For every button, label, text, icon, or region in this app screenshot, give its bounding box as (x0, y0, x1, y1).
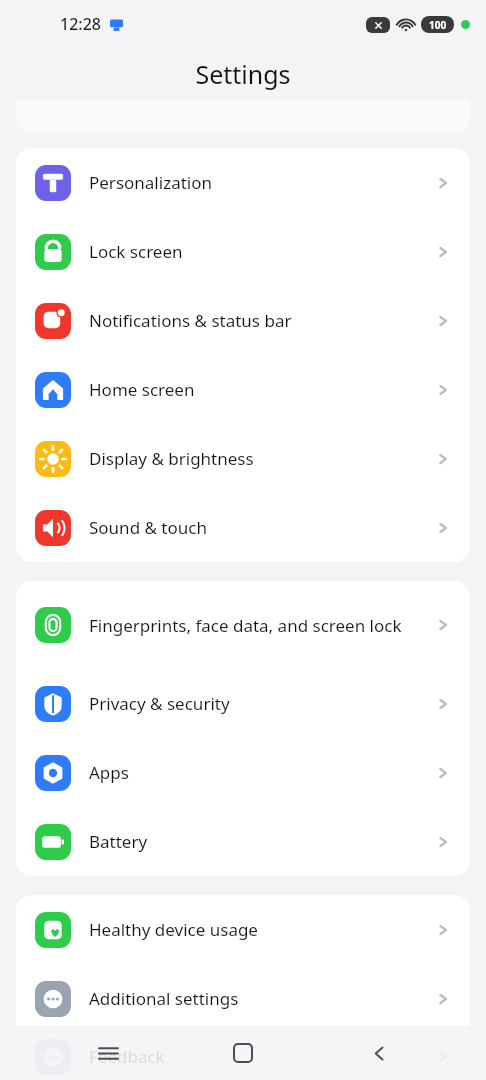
button[interactable]: Lock screen (16, 217, 470, 286)
button[interactable]: Additional settings (16, 964, 470, 1033)
staticText: Additional settings (89, 987, 424, 1010)
staticText: Home screen (89, 378, 424, 401)
button[interactable]: Battery (16, 807, 470, 876)
button[interactable]: Notifications & status bar (16, 286, 470, 355)
staticText: Display & brightness (89, 447, 424, 470)
staticText: Fingerprints, face data, and screen lock (89, 614, 424, 637)
staticText: 12:28 (60, 13, 101, 35)
button[interactable]: Privacy & security (16, 669, 470, 738)
staticText: Notifications & status bar (89, 309, 424, 332)
button[interactable]: Apps (16, 738, 470, 807)
button[interactable]: Home (215, 1026, 271, 1080)
staticText: Feedback (89, 1045, 424, 1068)
staticText: Privacy & security (89, 692, 424, 715)
button[interactable]: Personalization (16, 148, 470, 217)
staticText: Healthy device usage (89, 918, 424, 941)
button[interactable]: Fingerprints, face data, and screen lock (16, 581, 470, 669)
staticText: Apps (89, 761, 424, 784)
button[interactable]: Sound & touch (16, 493, 470, 562)
button[interactable]: Display & brightness (16, 424, 470, 493)
staticText: Settings (195, 57, 291, 91)
staticText: Sound & touch (89, 516, 424, 539)
button[interactable]: Feedback (16, 1033, 470, 1080)
staticText: 100 (429, 18, 447, 32)
button[interactable]: Recent apps (80, 1026, 136, 1080)
staticText: Battery (89, 830, 424, 853)
button[interactable]: Home screen (16, 355, 470, 424)
staticText: Personalization (89, 171, 424, 194)
staticText: Lock screen (89, 240, 424, 263)
button[interactable]: Back (351, 1026, 407, 1080)
button[interactable]: Healthy device usage (16, 895, 470, 964)
